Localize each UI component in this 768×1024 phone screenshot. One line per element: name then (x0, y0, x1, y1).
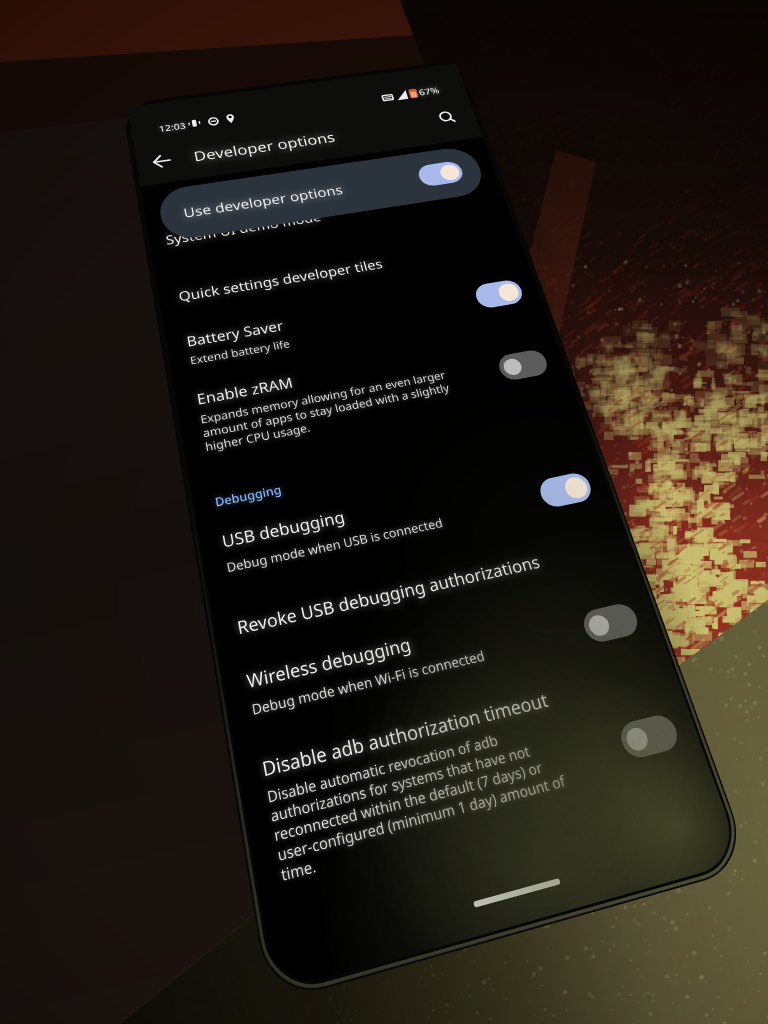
button[interactable]: Developer options screen (0, 0, 768, 1024)
